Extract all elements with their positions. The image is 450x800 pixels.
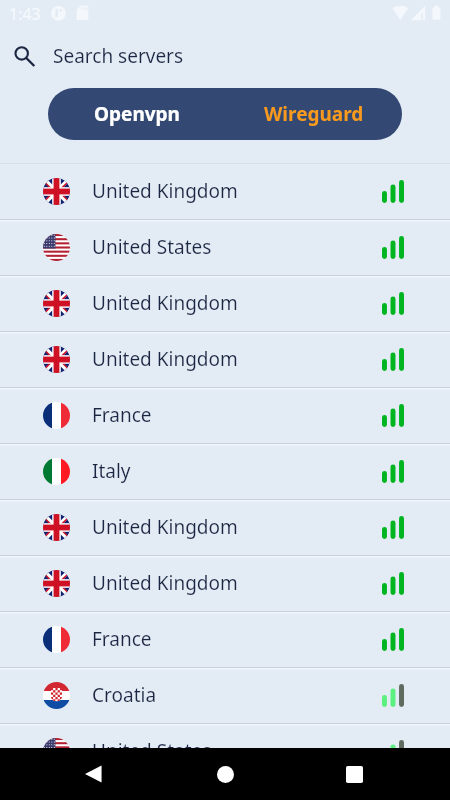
staticText: United Kingdom bbox=[92, 290, 238, 316]
button[interactable]: United Kingdom bbox=[0, 499, 450, 555]
button[interactable]: United States bbox=[0, 219, 450, 275]
button[interactable]: France bbox=[0, 387, 450, 443]
button[interactable]: United Kingdom bbox=[0, 163, 450, 219]
button[interactable]: Back bbox=[70, 750, 118, 798]
staticText: United Kingdom bbox=[92, 346, 238, 372]
staticText: Italy bbox=[92, 458, 131, 484]
staticText: United States bbox=[92, 234, 212, 260]
button[interactable]: Italy bbox=[0, 443, 450, 499]
button[interactable]: Recents bbox=[330, 750, 378, 798]
staticText: 1:43 bbox=[9, 3, 41, 25]
button[interactable]: Croatia bbox=[0, 667, 450, 723]
staticText: United Kingdom bbox=[92, 514, 238, 540]
button[interactable]: Wireguard bbox=[225, 88, 402, 140]
button[interactable]: Openvpn bbox=[48, 88, 225, 140]
button[interactable]: United States bbox=[0, 723, 450, 748]
staticText: United Kingdom bbox=[92, 570, 238, 596]
staticText: Wireguard bbox=[264, 101, 364, 127]
staticText: Croatia bbox=[92, 682, 157, 708]
staticText: United States bbox=[92, 738, 212, 748]
staticText: Openvpn bbox=[94, 101, 180, 127]
staticText: France bbox=[92, 402, 152, 428]
button[interactable]: United Kingdom bbox=[0, 555, 450, 611]
button[interactable]: Search bbox=[0, 28, 450, 80]
staticText: France bbox=[92, 626, 152, 652]
button[interactable]: France bbox=[0, 611, 450, 667]
button[interactable]: Home bbox=[201, 750, 249, 798]
button[interactable]: United Kingdom bbox=[0, 331, 450, 387]
button[interactable]: United Kingdom bbox=[0, 275, 450, 331]
staticText: United Kingdom bbox=[92, 178, 238, 204]
staticText: Search servers bbox=[53, 43, 184, 69]
other: Search bbox=[12, 42, 36, 66]
